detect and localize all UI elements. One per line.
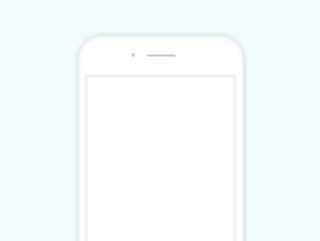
other: Smartphone illustration [0,0,320,241]
